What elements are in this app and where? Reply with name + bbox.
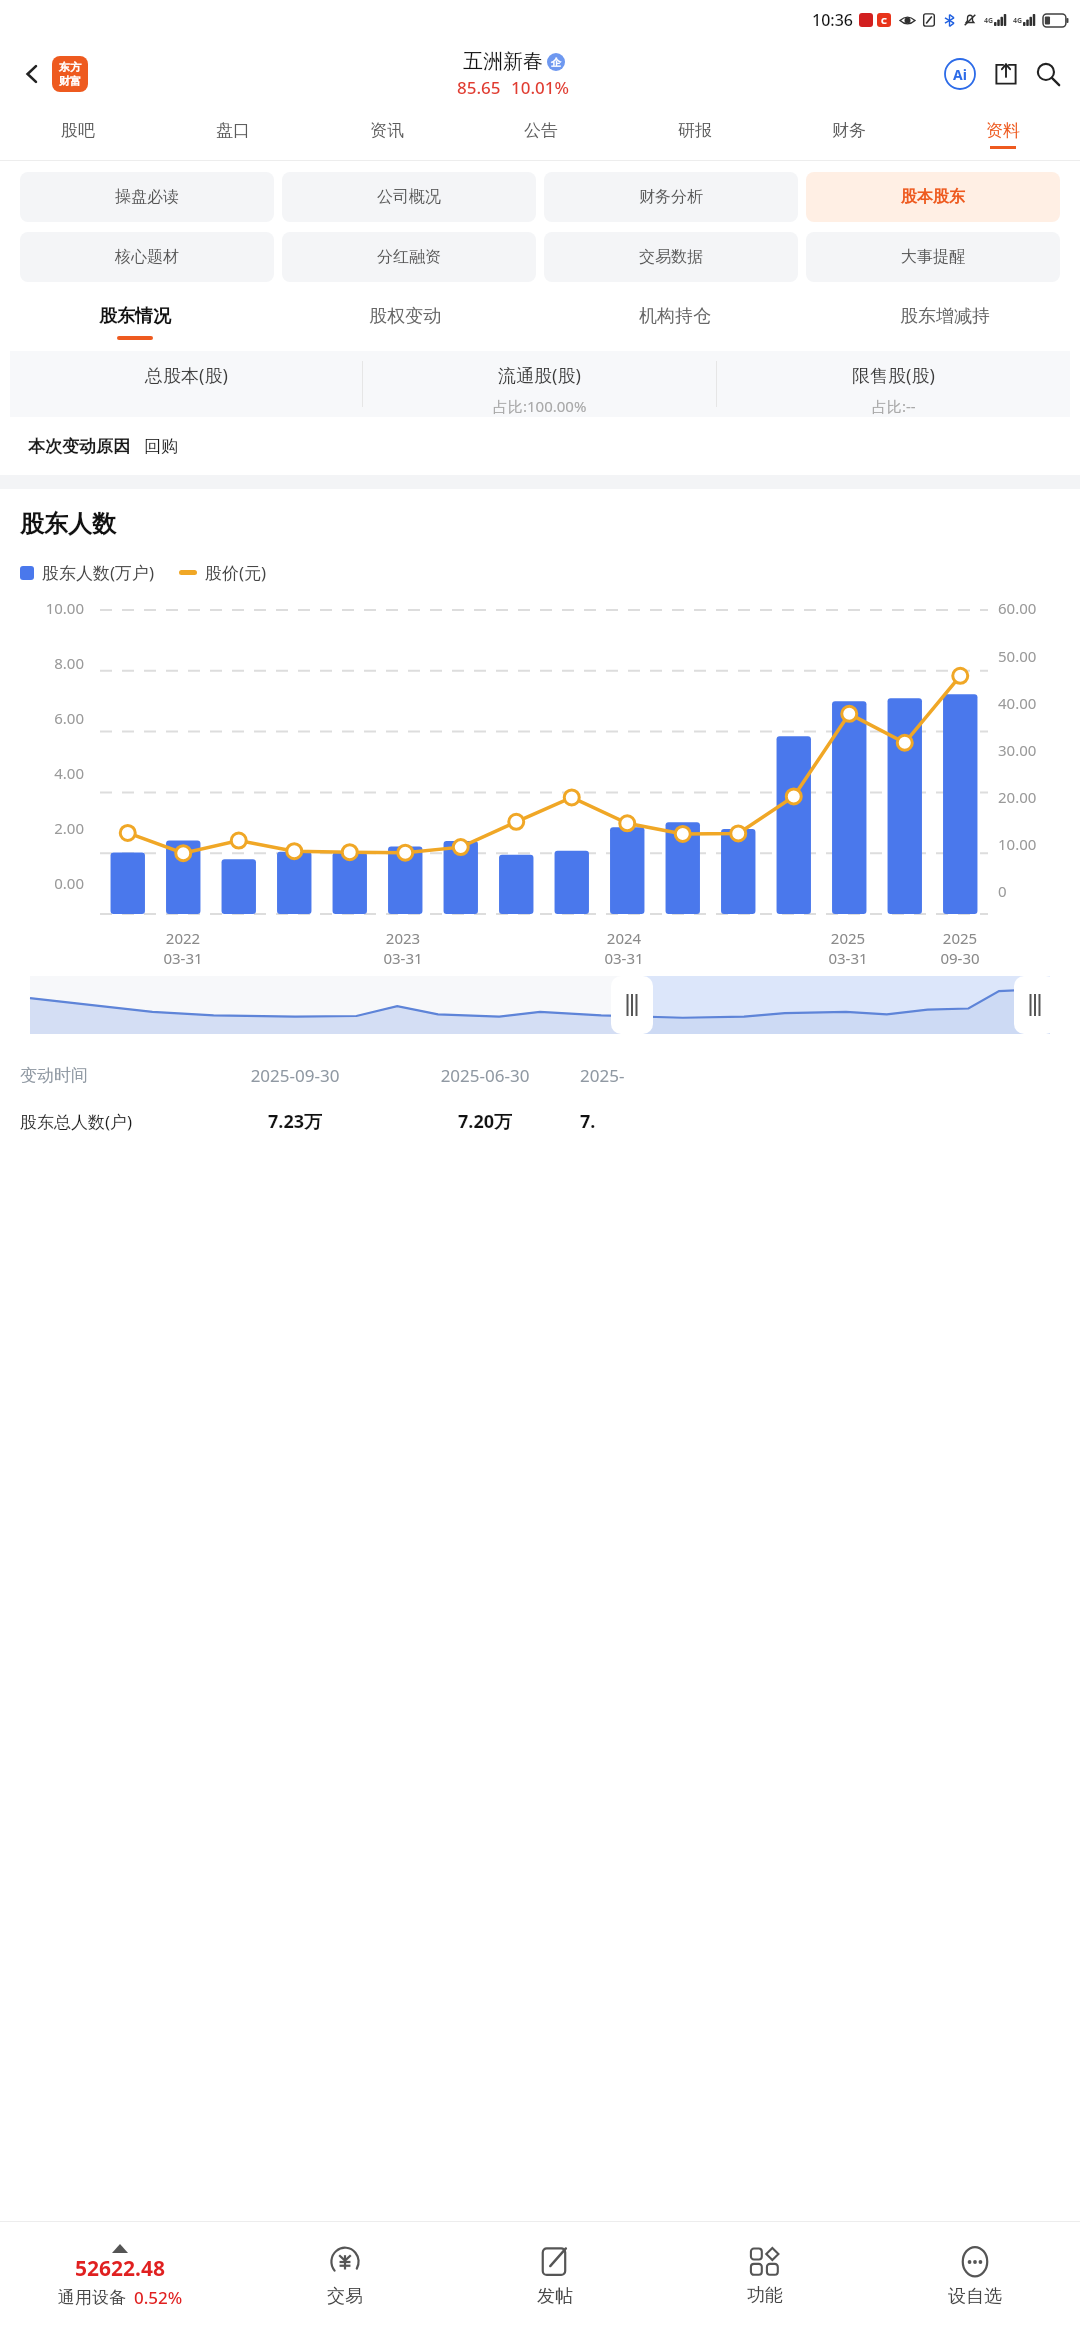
staticText: 0.00 [0, 873, 84, 893]
staticText: 财富 [59, 74, 81, 88]
staticText: 4.00 [0, 763, 84, 783]
button[interactable]: 分红融资 [282, 232, 536, 282]
button[interactable]: 核心题材 [20, 232, 274, 282]
button[interactable]: 研报 [618, 108, 772, 160]
button[interactable]: 功能 [660, 2222, 870, 2330]
button[interactable]: 发帖 [450, 2222, 660, 2330]
button[interactable]: Back [12, 54, 52, 94]
button[interactable]: Range handle [611, 976, 653, 1034]
button[interactable]: 资讯 [310, 108, 464, 160]
staticText: 核心题材 [115, 247, 179, 267]
button[interactable]: 52622.48 [0, 2222, 240, 2330]
staticText: 股权变动 [369, 305, 441, 328]
button[interactable]: 大事提醒 [806, 232, 1060, 282]
button[interactable]: 资料 [926, 108, 1080, 160]
staticText: 10:36 [812, 9, 853, 31]
button[interactable]: 总股本(股) [10, 351, 362, 417]
staticText: 资讯 [370, 120, 404, 141]
staticText: 股东增减持 [900, 305, 990, 328]
staticText: 盘口 [216, 120, 250, 141]
staticText: 60.00 [998, 598, 1080, 618]
button[interactable]: 股吧 [0, 108, 155, 160]
staticText: 财务分析 [639, 187, 703, 207]
staticText: 占比:-- [872, 396, 916, 416]
staticText: 2.00 [0, 818, 84, 838]
staticText: 公告 [524, 120, 558, 141]
staticText: 交易 [327, 2285, 363, 2308]
button[interactable]: 交易数据 [544, 232, 798, 282]
staticText: 发帖 [537, 2285, 573, 2308]
staticText: 五洲新春 [463, 49, 543, 74]
staticText: 流通股(股) [498, 363, 581, 388]
staticText: 2022 03-31 [163, 928, 203, 968]
staticText: 股东总人数(户) [20, 1110, 200, 1133]
staticText: 7.23万 [200, 1109, 390, 1134]
staticText: 变动时间 [20, 1065, 200, 1086]
staticText: 股吧 [61, 120, 95, 141]
staticText: 设自选 [948, 2285, 1002, 2308]
button[interactable]: Share [986, 54, 1026, 94]
staticText: 2024 03-31 [604, 928, 644, 968]
staticText: 东方 [59, 60, 81, 74]
staticText: 大事提醒 [901, 247, 965, 267]
button[interactable]: 公告 [464, 108, 618, 160]
staticText: 股本股东 [901, 187, 965, 207]
staticText: 4G [1013, 16, 1023, 26]
button[interactable]: 股东增减持 [810, 293, 1080, 351]
button[interactable]: 财务 [772, 108, 926, 160]
staticText: 操盘必读 [115, 187, 179, 207]
button[interactable]: Range handle [1014, 976, 1056, 1034]
button[interactable]: 限售股(股) [717, 351, 1070, 417]
staticText: 8.00 [0, 653, 84, 673]
button[interactable]: 股本股东 [806, 172, 1060, 222]
staticText: 2023 03-31 [383, 928, 423, 968]
staticText: 2025-09-30 [200, 1064, 390, 1087]
staticText: 总股本(股) [145, 363, 228, 388]
staticText: 50.00 [998, 646, 1080, 666]
staticText: 分红融资 [377, 247, 441, 267]
staticText: 52622.48 [75, 2254, 165, 2283]
staticText: 20.00 [998, 787, 1080, 807]
button[interactable]: 交易 [240, 2222, 450, 2330]
staticText: 机构持仓 [639, 305, 711, 328]
staticText: 85.65 [457, 76, 501, 99]
staticText: 2025-06-30 [390, 1064, 580, 1087]
button[interactable]: 操盘必读 [20, 172, 274, 222]
staticText: 股东人数 [20, 509, 116, 539]
staticText: 2025- [580, 1064, 625, 1087]
staticText: 30.00 [998, 740, 1080, 760]
staticText: 2025 03-31 [828, 928, 868, 968]
button[interactable]: 设自选 [870, 2222, 1080, 2330]
staticText: 0 [998, 881, 1080, 901]
staticText: 7.20万 [390, 1109, 580, 1134]
staticText: 企 [551, 56, 561, 69]
button[interactable]: 公司概况 [282, 172, 536, 222]
button[interactable]: 股权变动 [270, 293, 540, 351]
staticText: 股东人数(万户) [42, 561, 155, 584]
button[interactable]: Search [1028, 54, 1068, 94]
staticText: 股东情况 [99, 305, 171, 328]
staticText: 10.00 [998, 834, 1080, 854]
button[interactable]: 流通股(股) [363, 351, 716, 417]
staticText: 研报 [678, 120, 712, 141]
button[interactable]: East Money [52, 56, 88, 92]
staticText: 0.52% [134, 2286, 183, 2309]
button[interactable]: AI [940, 54, 980, 94]
staticText: 4G [984, 16, 994, 26]
staticText: 10.01% [511, 76, 570, 99]
staticText: 股价(元) [205, 561, 267, 584]
button[interactable]: 机构持仓 [540, 293, 810, 351]
button[interactable]: 盘口 [155, 108, 310, 160]
staticText: 10.00 [0, 598, 84, 618]
staticText: C [881, 14, 887, 26]
staticText: 交易数据 [639, 247, 703, 267]
button[interactable]: 财务分析 [544, 172, 798, 222]
button[interactable]: 股东情况 [0, 293, 270, 351]
staticText: 占比:100.00% [493, 396, 587, 416]
staticText: 7. [580, 1109, 596, 1134]
staticText: 功能 [747, 2284, 783, 2307]
staticText: 资料 [986, 120, 1020, 141]
staticText: Ai [953, 65, 967, 84]
staticText: 2025 09-30 [940, 928, 980, 968]
staticText: 6.00 [0, 708, 84, 728]
